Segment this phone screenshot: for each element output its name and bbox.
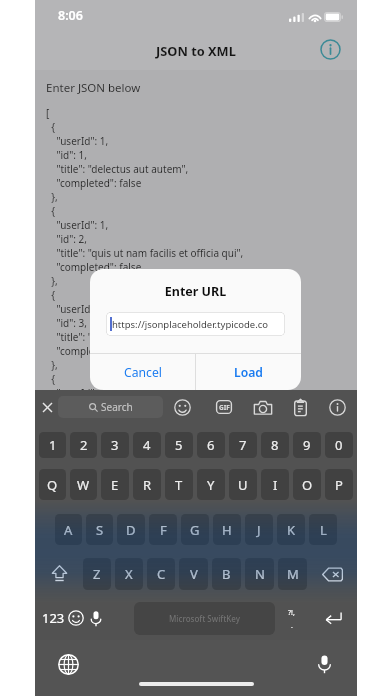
button[interactable]: Close bbox=[36, 396, 58, 418]
staticText: "title": "delectus aut autem", bbox=[46, 162, 189, 176]
button[interactable]: E bbox=[101, 469, 129, 500]
staticText: S bbox=[96, 521, 104, 539]
button[interactable]: Y bbox=[197, 469, 225, 500]
staticText: { bbox=[46, 204, 55, 218]
staticText: 9 bbox=[303, 436, 311, 454]
button[interactable]: Voice typing bbox=[312, 652, 336, 676]
button[interactable]: 123 bbox=[39, 603, 67, 633]
staticText: B bbox=[222, 565, 231, 583]
button[interactable]: 7 bbox=[229, 432, 257, 458]
button[interactable]: 3 bbox=[101, 432, 129, 458]
staticText: }, bbox=[46, 442, 58, 456]
button[interactable]: 0 bbox=[325, 432, 353, 458]
staticText: C bbox=[157, 565, 166, 583]
button[interactable]: 4 bbox=[133, 432, 161, 458]
button[interactable]: Cancel bbox=[90, 354, 195, 390]
button[interactable]: ?!, bbox=[281, 608, 301, 628]
button[interactable]: P bbox=[325, 469, 353, 500]
button[interactable]: 9 bbox=[293, 432, 321, 458]
staticText: "id": 1, bbox=[46, 148, 87, 162]
button[interactable]: Clipboard bbox=[288, 395, 312, 419]
staticText: 2 bbox=[80, 436, 88, 454]
button[interactable]: Emoji bbox=[170, 395, 194, 419]
staticText: { bbox=[46, 120, 55, 134]
button[interactable]: GIF bbox=[212, 395, 236, 419]
button[interactable]: W bbox=[70, 469, 97, 500]
button[interactable]: Settings bbox=[325, 395, 349, 419]
button[interactable]: A bbox=[55, 514, 82, 545]
button[interactable]: Camera bbox=[251, 395, 275, 419]
button[interactable]: R bbox=[133, 469, 161, 500]
button[interactable]: U bbox=[229, 469, 257, 500]
button[interactable]: Shift bbox=[37, 558, 81, 590]
staticText: }, bbox=[46, 274, 58, 288]
staticText: "title": "quis ut nam facilis et officia… bbox=[46, 246, 244, 260]
staticText: GIF bbox=[219, 403, 230, 412]
button[interactable]: O bbox=[293, 469, 321, 500]
button[interactable]: H bbox=[213, 514, 241, 545]
button[interactable]: 5 bbox=[165, 432, 193, 458]
button[interactable]: https://jsonplaceholder.typicode.co bbox=[106, 312, 285, 336]
staticText: H bbox=[222, 521, 232, 539]
button[interactable]: C bbox=[147, 558, 175, 590]
button[interactable]: V bbox=[179, 558, 208, 590]
staticText: N bbox=[255, 565, 265, 583]
button[interactable]: 8 bbox=[261, 432, 289, 458]
staticText: Y bbox=[207, 476, 215, 494]
staticText: }, bbox=[46, 358, 58, 372]
button[interactable]: M bbox=[278, 558, 307, 590]
button[interactable]: Emoji bbox=[66, 608, 86, 628]
staticText: 5 bbox=[175, 436, 183, 454]
staticText: "userId": 1, bbox=[46, 386, 109, 400]
button[interactable]: K bbox=[277, 514, 305, 545]
staticText: X bbox=[125, 565, 133, 583]
button[interactable]: Microsoft SwiftKey bbox=[134, 602, 275, 635]
button[interactable]: S bbox=[86, 514, 113, 545]
button[interactable]: N bbox=[245, 558, 274, 590]
staticText: Z bbox=[93, 565, 101, 583]
button[interactable]: Info bbox=[317, 36, 343, 62]
staticText: Enter JSON below bbox=[46, 80, 141, 96]
button[interactable]: F bbox=[149, 514, 177, 545]
button[interactable]: 6 bbox=[197, 432, 225, 458]
staticText: "id": 4, bbox=[46, 400, 87, 414]
staticText: "completed": false bbox=[46, 176, 142, 190]
staticText: R bbox=[143, 476, 152, 494]
staticText: 8:06 bbox=[58, 7, 83, 24]
staticText: "id": 2, bbox=[46, 232, 87, 246]
staticText: P bbox=[335, 476, 343, 494]
staticText: K bbox=[287, 521, 296, 539]
button[interactable]: L bbox=[309, 514, 337, 545]
button[interactable]: X bbox=[115, 558, 143, 590]
staticText: ?!, bbox=[288, 608, 295, 618]
button[interactable]: Z bbox=[83, 558, 111, 590]
staticText: E bbox=[111, 476, 119, 494]
staticText: Load bbox=[234, 364, 263, 381]
staticText: J bbox=[257, 521, 261, 539]
staticText: D bbox=[126, 521, 136, 539]
button[interactable]: B bbox=[212, 558, 241, 590]
button[interactable]: D bbox=[117, 514, 145, 545]
staticText: }, bbox=[46, 190, 58, 204]
staticText: "title": "fugiat veniam minus", bbox=[46, 330, 195, 344]
staticText: "userId": 1, bbox=[46, 218, 109, 232]
button[interactable]: Backspace bbox=[309, 558, 355, 590]
staticText: V bbox=[190, 565, 198, 583]
staticText: I bbox=[273, 476, 278, 494]
button[interactable]: I bbox=[261, 469, 289, 500]
button[interactable]: Change language bbox=[56, 652, 80, 676]
staticText: { bbox=[46, 288, 55, 302]
button[interactable]: Search bbox=[58, 396, 163, 418]
staticText: 3 bbox=[111, 436, 119, 454]
button[interactable]: T bbox=[165, 469, 193, 500]
button[interactable]: Load bbox=[196, 354, 301, 390]
button[interactable]: G bbox=[181, 514, 209, 545]
staticText: 8 bbox=[271, 436, 279, 454]
button[interactable]: 1 bbox=[39, 432, 66, 458]
button[interactable]: Voice input bbox=[86, 608, 106, 628]
button[interactable]: Enter bbox=[321, 606, 345, 630]
staticText: Q bbox=[47, 476, 58, 494]
button[interactable]: 2 bbox=[70, 432, 97, 458]
button[interactable]: J bbox=[245, 514, 273, 545]
button[interactable]: Q bbox=[39, 469, 66, 500]
